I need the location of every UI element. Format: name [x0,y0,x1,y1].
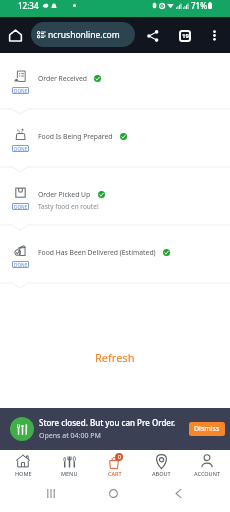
staticText: Food Has Been Delivered (Estimated) [38,248,156,257]
button[interactable]: Recents [41,483,61,503]
button[interactable]: DONE [0,169,230,219]
staticText: 0 [118,454,121,461]
staticText: MENU [61,470,78,477]
button[interactable]: Home [4,24,27,47]
staticText: ncrushonline.com [48,29,120,41]
button[interactable]: Dismiss [189,422,225,436]
staticText: 12:34 [18,0,39,11]
staticText: Dismiss [194,424,220,434]
button[interactable]: Back [168,483,188,503]
button[interactable]: Tabs [174,25,195,46]
staticText: DONE [14,146,28,152]
button[interactable]: Share [142,25,163,46]
button[interactable]: DONE [0,227,230,277]
staticText: Refresh [95,350,135,365]
staticText: DONE [14,88,28,94]
staticText: Tasty food en route! [38,202,99,211]
staticText: ABOUT [152,470,171,477]
button[interactable]: MENU [46,453,92,477]
staticText: Order Received [38,74,87,83]
staticText: CART [108,470,122,477]
button[interactable]: ncrushonline.com [31,22,135,47]
staticText: DONE [14,262,28,268]
staticText: Order Picked Up [38,190,91,199]
button[interactable]: ABOUT [138,453,184,477]
staticText: ACCOUNT [194,470,220,477]
staticText: 19 [182,32,189,40]
button[interactable]: Refresh [0,347,230,367]
staticText: HOME [15,470,32,477]
staticText: DONE [14,204,28,210]
button[interactable]: DONE [0,111,230,161]
button[interactable]: DONE [0,53,230,103]
button[interactable]: HOME [0,453,46,477]
button[interactable]: ACCOUNT [184,453,230,477]
button[interactable]: More options [204,25,225,46]
button[interactable]: Home [103,483,123,503]
button[interactable]: 0 [92,453,138,477]
staticText: Food Is Being Prepared [38,132,113,141]
staticText: 71% [191,0,207,11]
staticText: Store closed. But you can Pre Order. [39,417,176,428]
staticText: Opens at 04:00 PM [39,431,101,441]
